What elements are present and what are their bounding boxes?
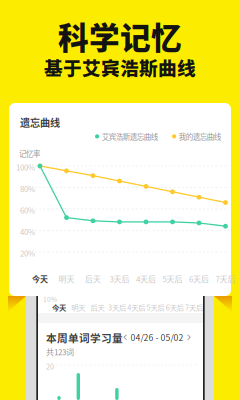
staticText: 80% (20, 183, 35, 194)
staticText: 后天 (85, 273, 101, 285)
staticText: 今天 (52, 302, 66, 313)
staticText: 100% (16, 161, 35, 173)
staticText: 5天后 (162, 273, 182, 285)
staticText: 5天后 (146, 302, 164, 313)
staticText: 04/26 - 05/02 (131, 331, 184, 343)
staticText: 基于艾宾浩斯曲线 (44, 53, 196, 80)
staticText: 艾宾浩斯遗忘曲线 (102, 131, 158, 142)
staticText: 7天后 (185, 302, 203, 313)
staticText: 今天 (32, 273, 48, 285)
staticText: 共123词 (46, 346, 74, 358)
staticText: 我的遗忘曲线 (179, 131, 221, 142)
staticText: 遗忘曲线 (20, 115, 60, 130)
staticText: 3天后 (109, 273, 129, 285)
staticText: 明天 (71, 302, 85, 313)
staticText: 记忆率 (19, 148, 40, 159)
staticText: 4天后 (127, 302, 145, 313)
staticText: 40% (20, 226, 35, 237)
staticText: 本周单词学习量 (46, 330, 123, 345)
button[interactable]: Next week (188, 335, 190, 340)
staticText: 6天后 (166, 302, 184, 313)
staticText: 20% (20, 247, 35, 259)
staticText: 60% (20, 204, 35, 216)
staticText: 明天 (58, 273, 74, 285)
staticText: 科学记忆 (58, 14, 182, 58)
staticText: 后天 (91, 302, 105, 313)
staticText: 3天后 (108, 302, 126, 313)
staticText: 20 (46, 361, 54, 372)
staticText: 10% (43, 294, 57, 304)
staticText: 7天后 (215, 273, 235, 285)
staticText: 4天后 (136, 273, 156, 285)
staticText: 6天后 (189, 273, 209, 285)
button[interactable]: Previous week (124, 335, 127, 340)
